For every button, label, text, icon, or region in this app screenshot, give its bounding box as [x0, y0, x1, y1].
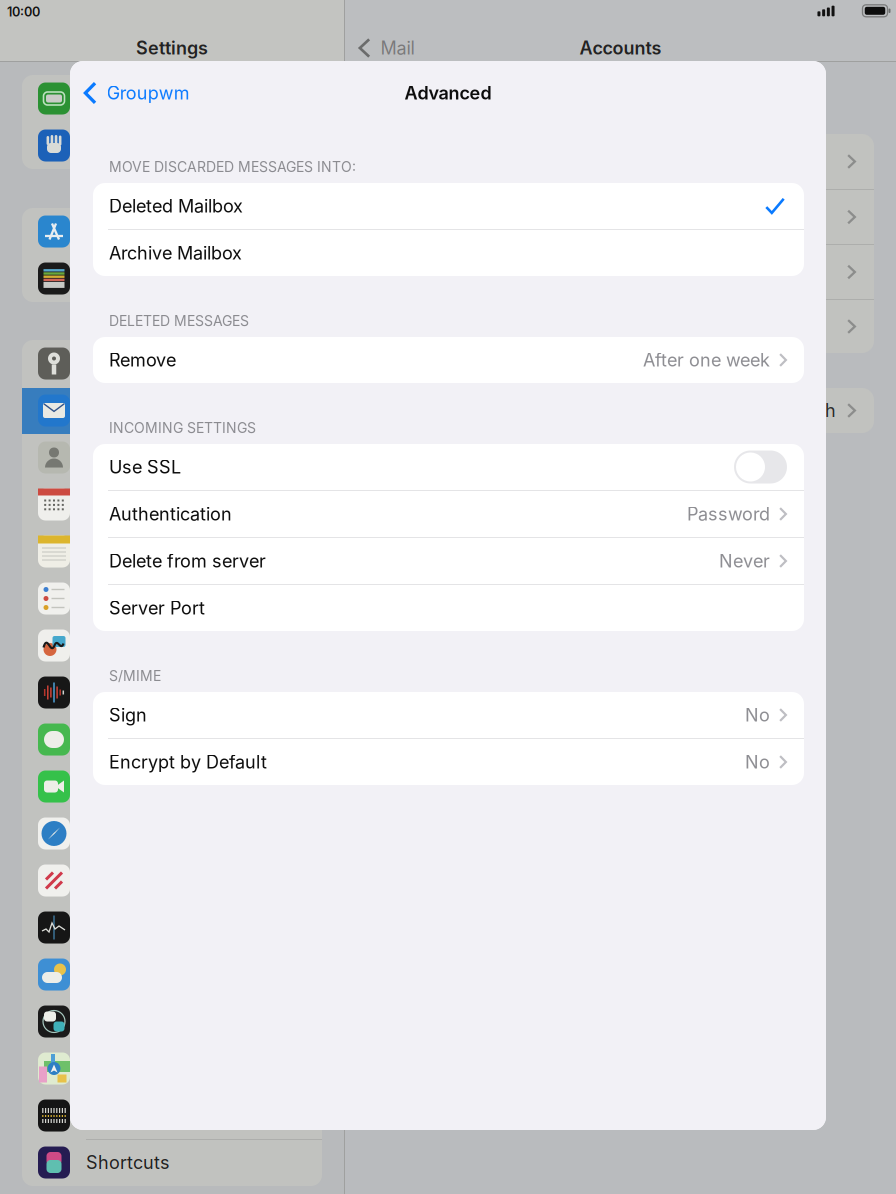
button[interactable]: Groupwm [70, 76, 200, 110]
staticText: Accounts [579, 37, 661, 59]
staticText: Never [719, 550, 770, 572]
staticText: Shortcuts [86, 1152, 170, 1173]
staticText: DELETED MESSAGES [109, 312, 249, 329]
staticText: Deleted Mailbox [109, 195, 243, 217]
button[interactable]: Remove [93, 337, 804, 383]
staticText: INCOMING SETTINGS [109, 419, 256, 436]
staticText: Server Port [109, 597, 205, 619]
staticText: Authentication [109, 503, 232, 525]
staticText: Mail [380, 37, 414, 59]
staticText: Use SSL [109, 456, 181, 478]
staticText: After one week [643, 349, 770, 371]
button[interactable]: Server Port [93, 585, 804, 631]
staticText: MOVE DISCARDED MESSAGES INTO: [109, 158, 356, 175]
button[interactable]: Delete from server [93, 538, 804, 584]
button[interactable]: Archive Mailbox [93, 230, 804, 276]
staticText: 10:00 [7, 4, 40, 20]
staticText: Delete from server [109, 550, 266, 572]
staticText: Remove [109, 349, 176, 371]
staticText: Sign [109, 704, 147, 726]
staticText: Advanced [404, 82, 491, 104]
staticText: S/MIME [109, 667, 161, 684]
button[interactable]: Authentication [93, 491, 804, 537]
button[interactable]: Encrypt by Default [93, 739, 804, 785]
staticText: Archive Mailbox [109, 242, 242, 264]
staticText: Settings [136, 37, 208, 59]
button[interactable]: Mail [358, 33, 414, 63]
staticText: Push [793, 400, 836, 421]
staticText: Groupwm [107, 82, 190, 104]
button[interactable]: Sign [93, 692, 804, 738]
button[interactable]: Use SSL [93, 444, 804, 490]
staticText: No [745, 751, 770, 773]
staticText: No [745, 704, 770, 726]
staticText: Password [687, 503, 770, 525]
button[interactable]: Deleted Mailbox [93, 183, 804, 229]
staticText: Encrypt by Default [109, 751, 267, 773]
